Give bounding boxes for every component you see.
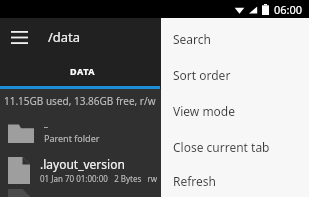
staticText: Close current tab	[173, 139, 270, 155]
button[interactable]: .layout_version	[0, 151, 309, 189]
staticText: 01 Jan 70 01:00:00 2 Bytes rw	[40, 173, 158, 184]
staticText: /data	[48, 28, 81, 46]
staticText: DATA	[70, 65, 96, 77]
staticText: View mode	[173, 103, 236, 119]
staticText: Parent folder	[44, 132, 100, 144]
button[interactable]: View mode	[161, 93, 309, 129]
staticText: Sort order	[173, 67, 231, 83]
staticText: 06:00	[274, 2, 303, 17]
button[interactable]	[0, 189, 309, 197]
button[interactable]: Sort order	[161, 57, 309, 93]
staticText: Search	[173, 31, 211, 47]
staticText: .layout_version	[40, 156, 125, 172]
button[interactable]: Search	[161, 21, 309, 57]
staticText: ..	[44, 121, 48, 131]
button[interactable]: DATA	[0, 56, 309, 86]
button[interactable]: ..	[0, 113, 309, 151]
button[interactable]: Open navigation drawer	[4, 22, 34, 52]
staticText: 11.15GB used, 13.86GB free, r/w	[4, 94, 156, 108]
button[interactable]: Close current tab	[161, 129, 309, 165]
staticText: Refresh	[173, 173, 217, 189]
button[interactable]: Refresh	[161, 165, 309, 197]
